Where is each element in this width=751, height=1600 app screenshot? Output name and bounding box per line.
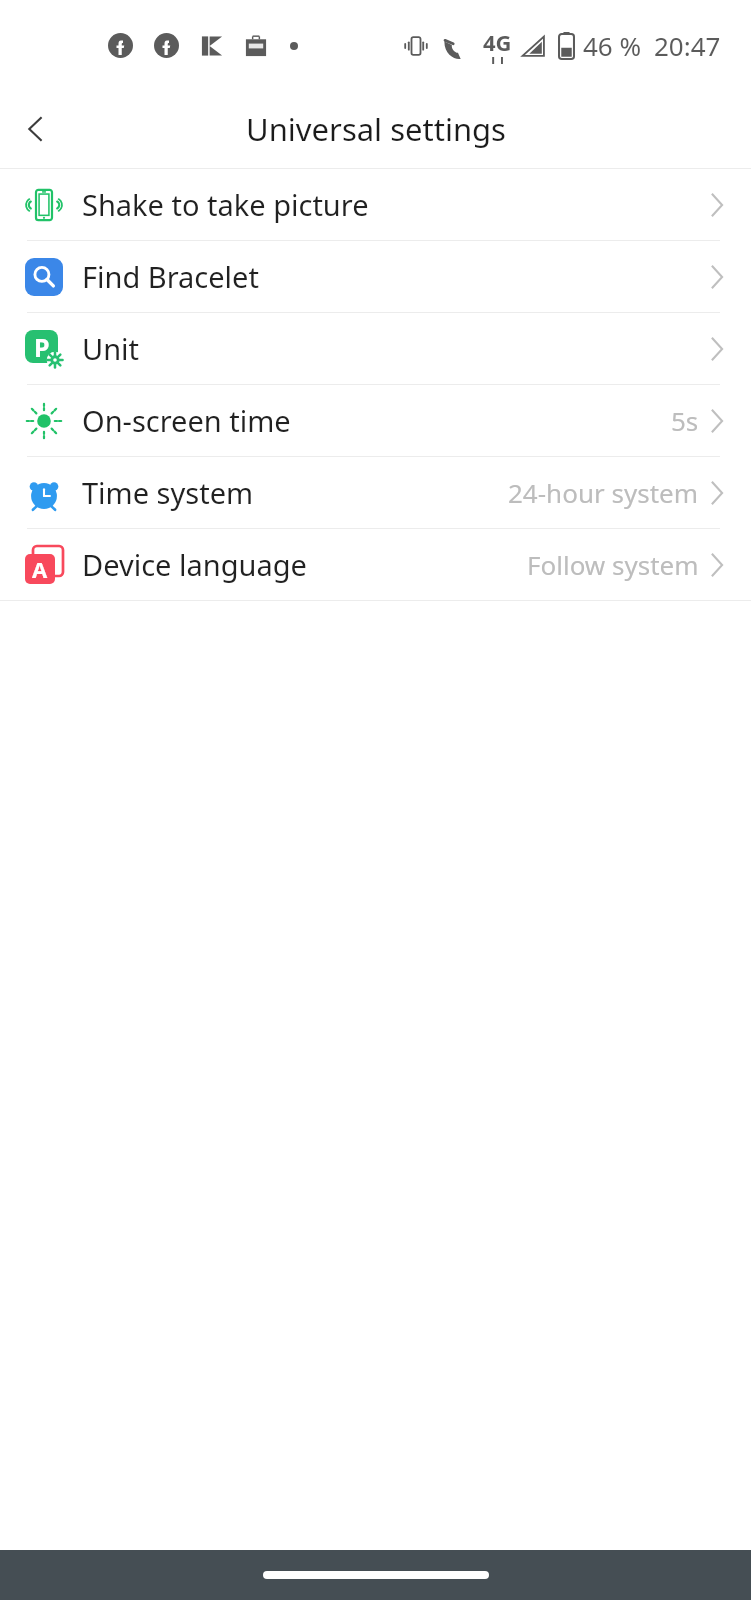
staticText: 46 % <box>583 28 642 63</box>
button[interactable]: P <box>0 313 751 385</box>
staticText: 4G <box>483 27 512 57</box>
button[interactable]: Find Bracelet <box>0 241 751 313</box>
button[interactable]: A <box>0 529 751 601</box>
staticText: P <box>34 330 50 363</box>
staticText: Shake to take picture <box>82 185 369 224</box>
button[interactable]: On-screen time <box>0 385 751 457</box>
staticText: Follow system <box>527 547 699 582</box>
staticText: Universal settings <box>246 108 506 150</box>
staticText: A <box>32 554 48 584</box>
button[interactable]: Time system <box>0 457 751 529</box>
staticText: Device language <box>82 545 307 584</box>
staticText: On-screen time <box>82 401 291 440</box>
staticText: 24-hour system <box>508 475 699 510</box>
button[interactable]: Shake to take picture <box>0 169 751 241</box>
button[interactable]: Back <box>8 101 64 157</box>
staticText: Find Bracelet <box>82 257 259 296</box>
staticText: Unit <box>82 329 140 368</box>
staticText: Time system <box>82 473 254 512</box>
button[interactable]: Home <box>263 1571 489 1579</box>
staticText: 20:47 <box>654 28 721 63</box>
staticText: 5s <box>671 403 699 438</box>
